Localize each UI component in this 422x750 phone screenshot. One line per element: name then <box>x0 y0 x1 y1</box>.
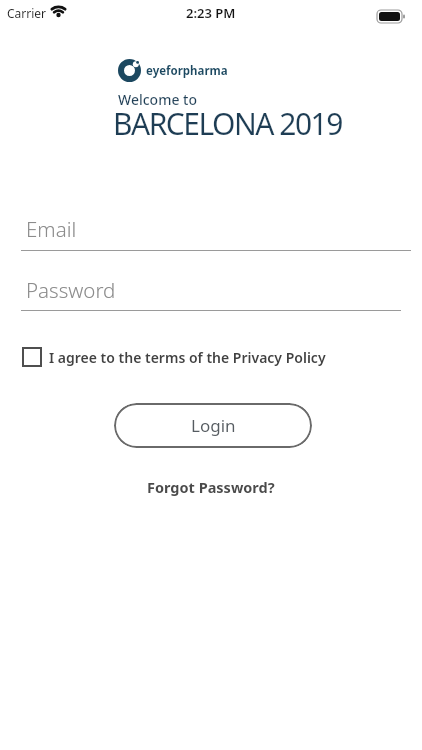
staticText: 2:23 PM <box>186 4 236 22</box>
staticText: Welcome to <box>118 90 197 109</box>
staticText: BARCELONA 2019 <box>113 103 342 144</box>
staticText: Password <box>26 276 116 304</box>
button[interactable]: Email <box>21 214 411 251</box>
button[interactable]: I agree to the terms of the Privacy Poli… <box>22 347 326 367</box>
button[interactable]: Forgot Password? <box>147 477 275 497</box>
staticText: I agree to the terms of the Privacy Poli… <box>49 348 326 367</box>
staticText: Carrier <box>7 5 47 21</box>
staticText: eyeforpharma <box>146 63 228 79</box>
button[interactable]: Password <box>21 275 401 311</box>
button[interactable]: Login <box>114 403 312 448</box>
staticText: Email <box>26 215 77 243</box>
staticText: Login <box>191 414 236 437</box>
staticText: Forgot Password? <box>147 477 275 497</box>
